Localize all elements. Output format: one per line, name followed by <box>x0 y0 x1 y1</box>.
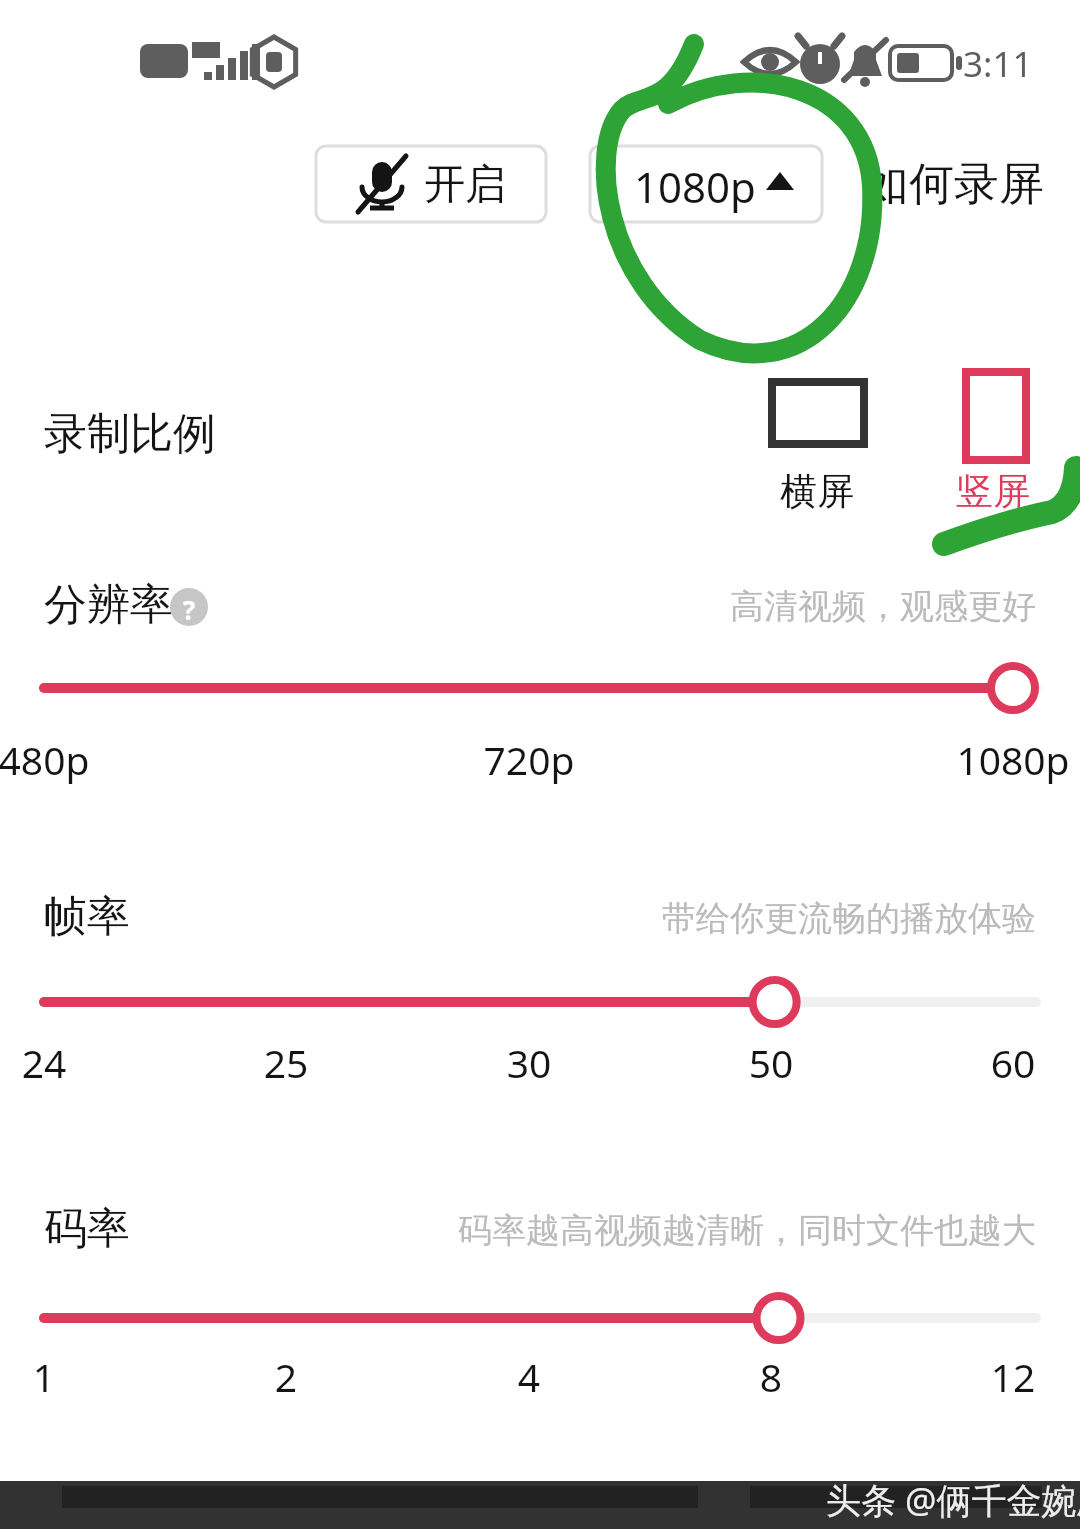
staticText: 12 <box>913 1350 1080 1406</box>
button[interactable]: 1080p <box>590 146 822 222</box>
staticText: 3:11 <box>963 40 1033 88</box>
button[interactable]: 如何录屏 <box>864 156 1044 213</box>
staticText: 24 <box>0 1036 144 1092</box>
staticText: 横屏 <box>742 468 892 518</box>
staticText: 分辨率 <box>44 578 173 632</box>
button[interactable]: 竖屏 <box>918 372 1068 512</box>
staticText: 60 <box>913 1036 1080 1092</box>
staticText: 2 <box>186 1350 386 1406</box>
staticText: 带给你更流畅的播放体验 <box>0 897 1036 949</box>
staticText: ? <box>170 592 208 626</box>
staticText: 25 <box>186 1036 386 1092</box>
staticText: 720p <box>429 733 629 789</box>
staticText: 码率 <box>44 1202 130 1256</box>
staticText: 4 <box>429 1350 629 1406</box>
staticText: 1080p <box>913 733 1080 789</box>
button[interactable] <box>0 968 1080 1036</box>
staticText: 1080p <box>634 158 756 215</box>
staticText: 录制比例 <box>44 407 216 461</box>
button[interactable] <box>0 1284 1080 1352</box>
button[interactable]: 开启 <box>316 146 546 222</box>
staticText: 1 <box>0 1350 144 1406</box>
staticText: 帧率 <box>44 890 130 944</box>
staticText: 码率越高视频越清晰，同时文件也越大 <box>0 1209 1036 1261</box>
button[interactable]: Help <box>170 588 208 626</box>
staticText: 高清视频，观感更好 <box>0 585 1036 637</box>
staticText: 8 <box>671 1350 871 1406</box>
staticText: 开启 <box>424 159 506 211</box>
staticText: 30 <box>429 1036 629 1092</box>
staticText: 竖屏 <box>918 468 1068 518</box>
staticText: 480p <box>0 733 144 789</box>
button[interactable] <box>0 654 1080 722</box>
staticText: 头条 @俩千金婉欣 <box>826 1476 1080 1524</box>
staticText: 50 <box>671 1036 871 1092</box>
button[interactable]: 横屏 <box>742 372 892 512</box>
